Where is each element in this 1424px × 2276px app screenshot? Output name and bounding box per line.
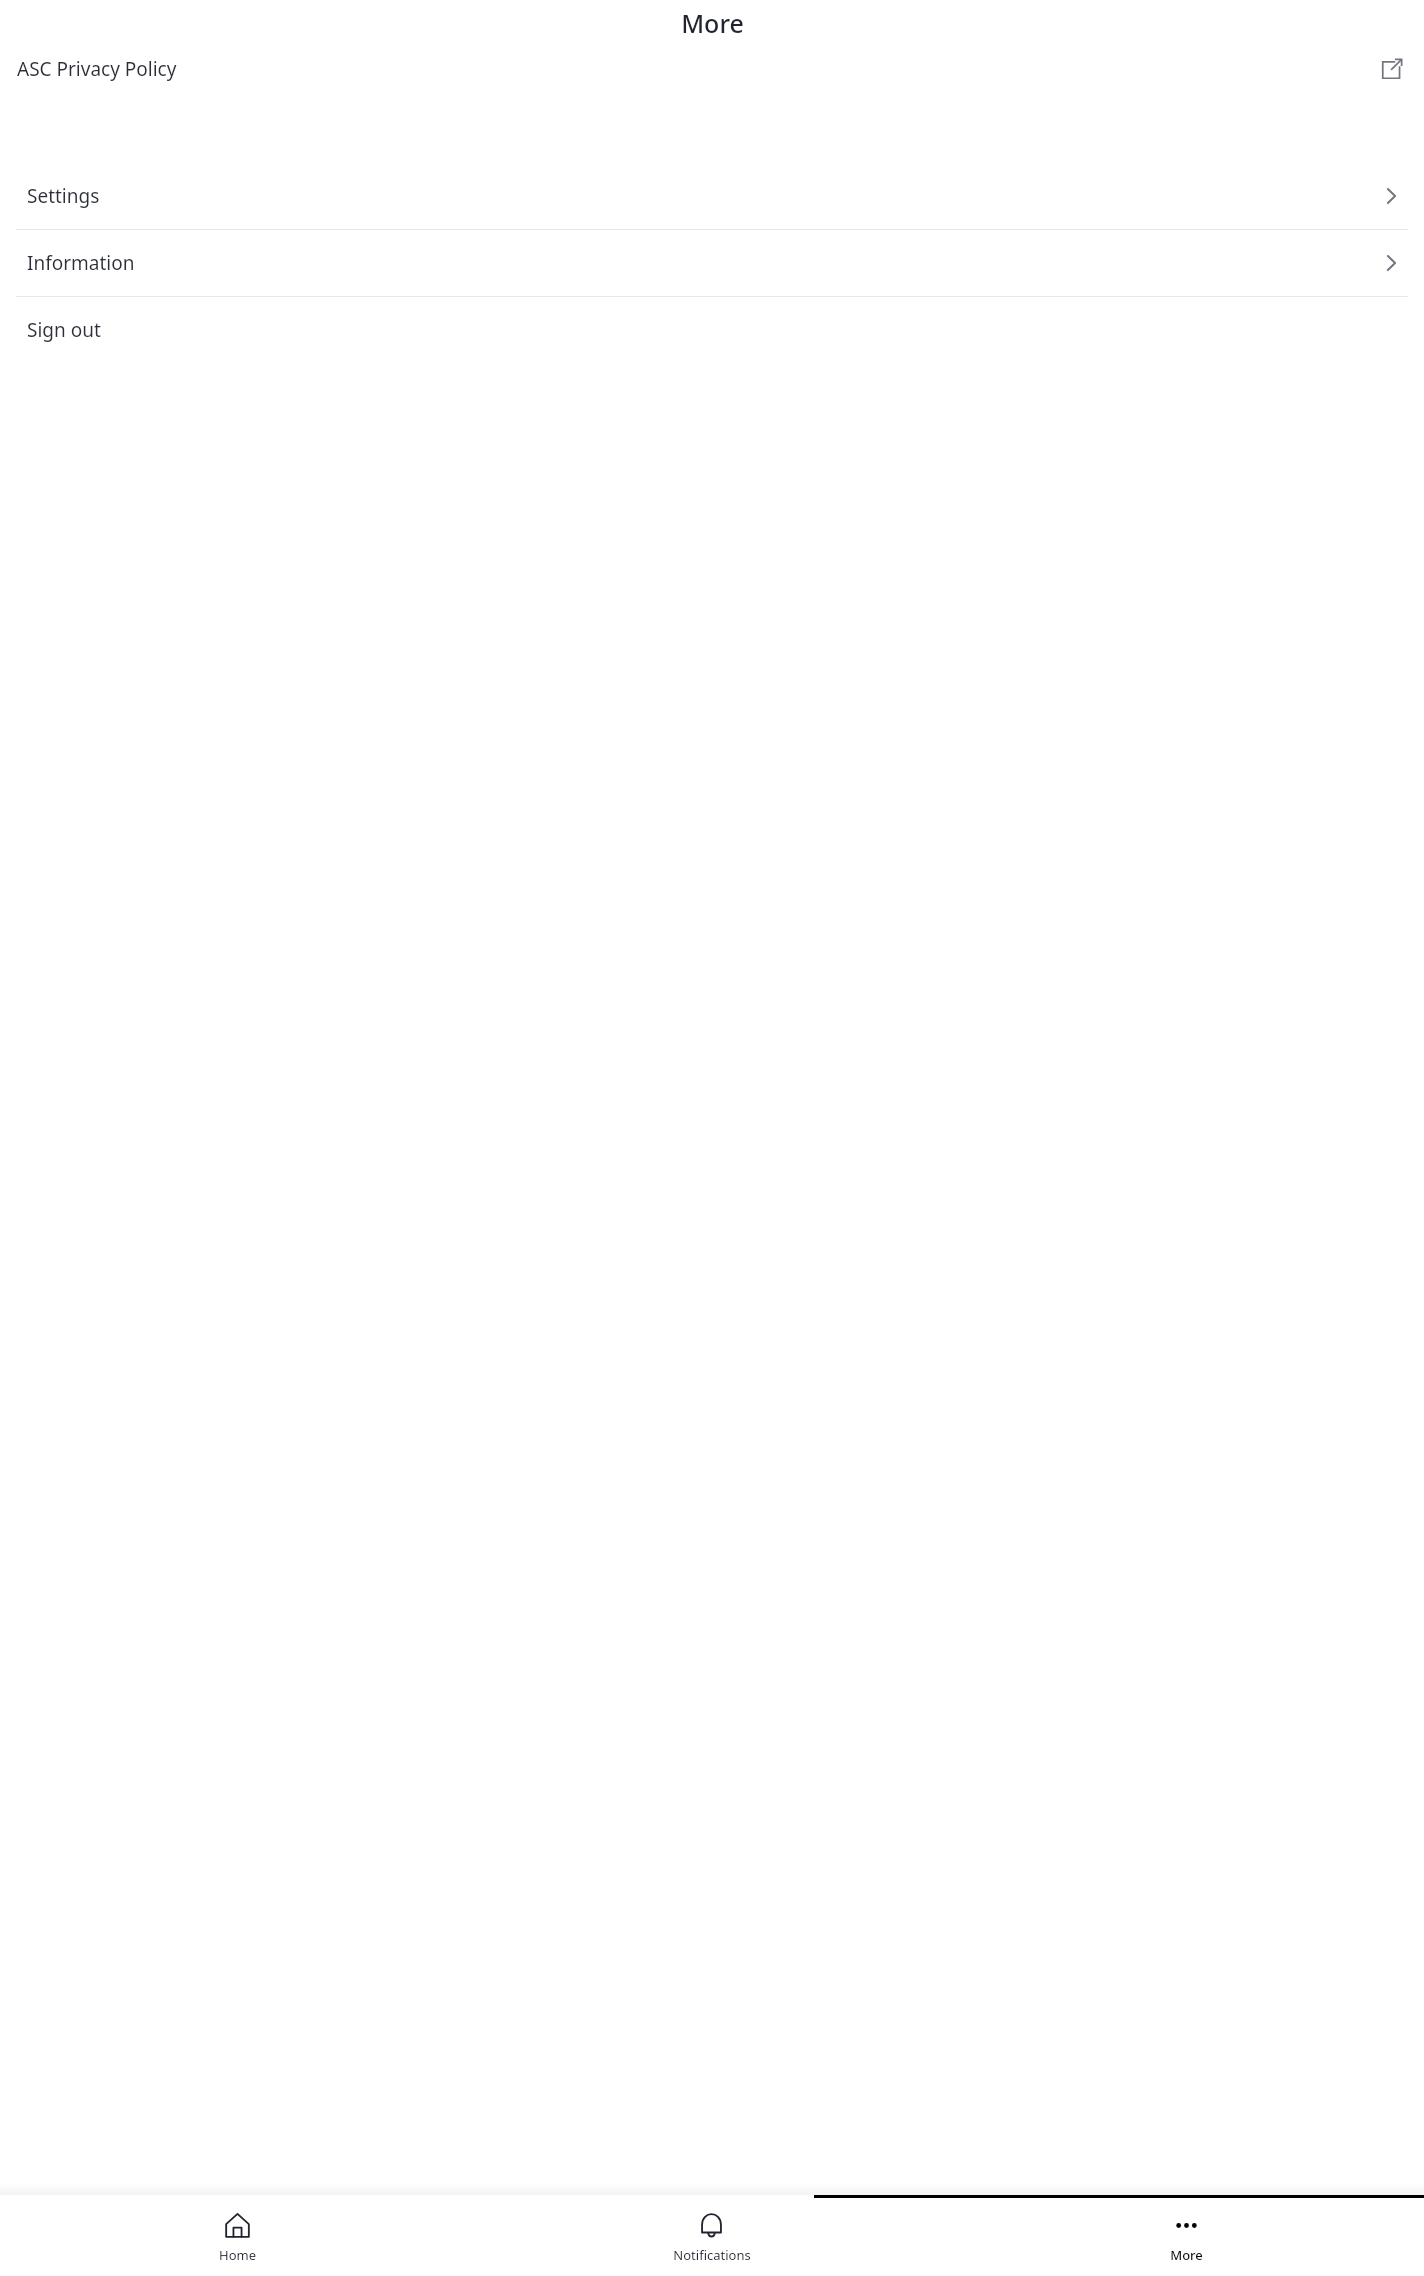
button[interactable]: ASC Privacy Policy — [0, 46, 1424, 92]
staticText: More — [1170, 2246, 1203, 2264]
button[interactable]: More — [949, 2198, 1424, 2276]
button[interactable]: Information — [0, 230, 1424, 296]
staticText: Settings — [27, 183, 100, 209]
staticText: Information — [27, 250, 135, 276]
staticText: ASC Privacy Policy — [17, 56, 177, 82]
other: Open ASC Privacy Policy — [1380, 58, 1403, 81]
button[interactable]: Sign out — [0, 297, 1424, 363]
staticText: Sign out — [27, 317, 101, 343]
staticText: Home — [219, 2246, 256, 2264]
button[interactable]: Settings — [0, 163, 1424, 229]
button[interactable]: Notifications — [474, 2198, 949, 2276]
staticText: More — [681, 6, 744, 40]
staticText: Notifications — [673, 2246, 751, 2264]
button[interactable]: Home — [0, 2198, 474, 2276]
